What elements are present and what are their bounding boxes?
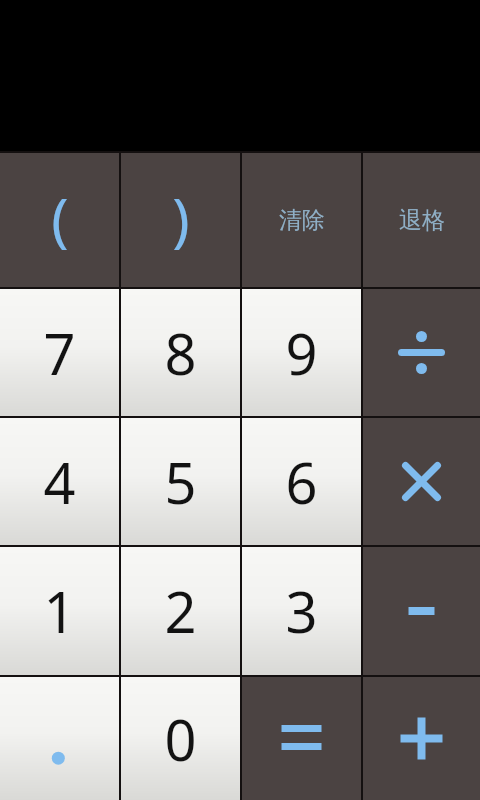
button[interactable]: 8 [121,289,240,416]
button[interactable]: Backspace [363,153,480,287]
staticText: 8 [164,315,197,391]
staticText: 5 [164,444,197,520]
staticText: 2 [164,573,197,649]
button[interactable]: 9 [242,289,361,416]
staticText: 7 [43,315,76,391]
staticText: ) [172,179,190,258]
staticText: 9 [285,315,318,391]
button[interactable]: 0 [121,677,240,800]
staticText: 3 [285,573,318,649]
button[interactable]: Close parenthesis [121,153,240,287]
staticText: 清除 [279,206,325,235]
button[interactable]: Minus [363,547,480,675]
button[interactable]: 6 [242,418,361,545]
button[interactable]: Decimal point [0,677,119,800]
staticText: 1 [43,573,76,649]
button[interactable]: Equals [242,677,361,800]
staticText: 6 [285,444,318,520]
button[interactable]: Divide [363,289,480,416]
button[interactable]: Open parenthesis [0,153,119,287]
button[interactable]: 1 [0,547,119,675]
button[interactable]: Plus [363,677,480,800]
staticText: 0 [164,701,197,777]
staticText: ( [51,179,69,258]
button[interactable]: Multiply [363,418,480,545]
button[interactable]: 5 [121,418,240,545]
staticText: 4 [43,444,76,520]
button[interactable]: 7 [0,289,119,416]
button[interactable]: 4 [0,418,119,545]
button[interactable]: Clear [242,153,361,287]
button[interactable]: 2 [121,547,240,675]
button[interactable]: 3 [242,547,361,675]
staticText: 退格 [399,206,445,235]
